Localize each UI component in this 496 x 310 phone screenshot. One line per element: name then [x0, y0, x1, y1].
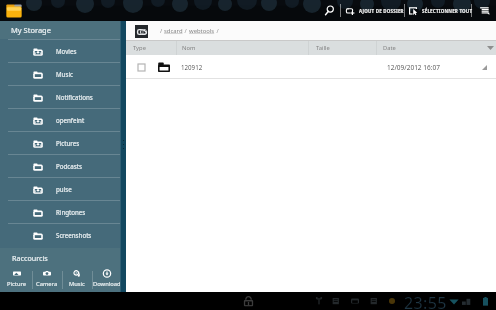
button[interactable]: openfeint	[0, 108, 120, 131]
button[interactable]: Music	[0, 62, 120, 85]
button[interactable]: App	[5, 2, 22, 19]
button[interactable]: Ringtones	[0, 200, 120, 223]
button[interactable]: Pictures	[0, 131, 120, 154]
staticText: Download	[93, 280, 121, 288]
staticText: Raccourcis	[12, 253, 48, 263]
staticText: Picture	[7, 280, 27, 288]
staticText: Nom	[182, 44, 196, 52]
staticText: Ringtones	[56, 208, 86, 216]
button[interactable]: Up one level	[135, 25, 148, 38]
staticText: Date	[383, 44, 396, 52]
button[interactable]	[407, 0, 472, 21]
staticText: Movies	[56, 47, 77, 55]
button[interactable]: Camera	[32, 268, 62, 292]
staticText: pulse	[56, 185, 72, 193]
staticText: /	[160, 27, 164, 35]
staticText: SÉLECTIONNER TOUT	[422, 8, 473, 14]
button[interactable]: Music	[62, 268, 92, 292]
button[interactable]: Search	[319, 0, 339, 21]
staticText: Music	[56, 70, 73, 78]
button[interactable]: 120912	[126, 55, 496, 79]
staticText: /	[215, 27, 219, 35]
button[interactable]: pulse	[0, 177, 120, 200]
staticText: /	[183, 27, 189, 35]
staticText: My Storage	[11, 25, 51, 35]
button[interactable]: More options	[474, 0, 495, 21]
staticText: 23:55	[404, 292, 447, 310]
button[interactable]: Sort	[484, 42, 496, 54]
button[interactable]: Screen lock	[242, 294, 254, 308]
button[interactable]: Podcasts	[0, 154, 120, 177]
staticText: Podcasts	[56, 162, 82, 170]
staticText: Screenshots	[56, 231, 92, 239]
button[interactable]: Movies	[0, 39, 120, 62]
staticText: Music	[69, 280, 85, 288]
staticText: Camera	[36, 280, 58, 288]
staticText: 120912	[181, 63, 203, 71]
staticText: AJOUT DE DOSSIER	[359, 8, 404, 14]
button[interactable]: Notifications	[0, 85, 120, 108]
button[interactable]: Download	[92, 268, 122, 292]
button[interactable]: webtools	[189, 27, 215, 35]
button[interactable]: sdcard	[164, 27, 183, 35]
button[interactable]: Screenshots	[0, 223, 120, 246]
button[interactable]: Picture	[2, 268, 32, 292]
staticText: Type	[133, 44, 146, 52]
staticText: 12/09/2012 16:07	[387, 63, 440, 72]
staticText: openfeint	[56, 116, 85, 124]
staticText: Notifications	[56, 93, 93, 101]
button[interactable]	[344, 0, 404, 21]
staticText: Taille	[316, 44, 330, 52]
staticText: Pictures	[56, 139, 80, 147]
